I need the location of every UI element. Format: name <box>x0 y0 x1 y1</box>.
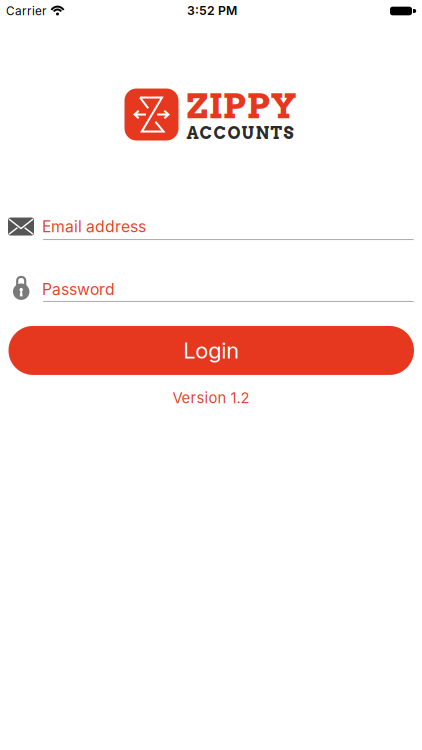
staticText: ZIPPY <box>186 85 296 127</box>
staticText: Carrier <box>6 4 46 18</box>
button[interactable]: Version 1.2 <box>172 389 249 407</box>
staticText: A C C O U N T S <box>186 123 293 143</box>
staticText: 3:52 PM <box>187 3 237 18</box>
staticText: Version 1.2 <box>172 389 249 407</box>
staticText: Login <box>183 337 239 364</box>
button[interactable]: Email address <box>0 217 422 240</box>
button[interactable]: Login <box>8 326 414 375</box>
staticText: Email address <box>42 217 146 236</box>
staticText: Password <box>42 280 115 299</box>
button[interactable]: Password <box>0 275 422 302</box>
